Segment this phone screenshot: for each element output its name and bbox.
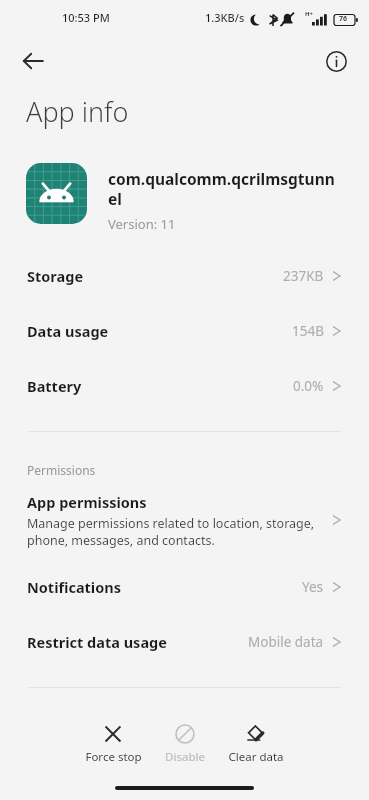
staticText: Force stop [85, 749, 142, 765]
button[interactable]: Restrict data usage [0, 619, 369, 665]
staticText: Data usage [27, 321, 109, 341]
button[interactable]: Clear data [223, 722, 289, 767]
staticText: Mobile data [248, 633, 324, 651]
button[interactable]: Battery [0, 363, 369, 409]
staticText: H+ [305, 10, 314, 18]
staticText: Storage [27, 266, 84, 286]
button[interactable]: App details [315, 40, 357, 82]
staticText: 1.3KB/s [205, 10, 245, 25]
button[interactable]: Back [12, 40, 54, 82]
staticText: Clear data [228, 749, 284, 765]
button[interactable]: Force stop [80, 722, 146, 767]
staticText: 154B [292, 322, 324, 340]
button: Disable [152, 722, 218, 767]
staticText: App info [26, 93, 129, 130]
staticText: Battery [27, 376, 82, 396]
staticText: Notifications [27, 577, 121, 597]
staticText: com.qualcomm.qcrilmsgtunn el [108, 168, 335, 210]
staticText: Version: 11 [108, 215, 176, 233]
staticText: Manage permissions related to location, … [27, 515, 315, 548]
button[interactable]: Data usage [0, 308, 369, 354]
staticText: 0.0% [293, 377, 324, 395]
staticText: 237KB [283, 267, 324, 285]
staticText: Yes [302, 578, 324, 596]
staticText: Disable [165, 749, 205, 765]
staticText: 76 [339, 14, 348, 24]
staticText: Restrict data usage [27, 632, 167, 652]
staticText: 10:53 PM [62, 10, 110, 25]
staticText: App permissions [27, 492, 147, 512]
button[interactable]: App permissions [0, 489, 369, 551]
staticText: Permissions [27, 462, 96, 478]
button[interactable]: Storage [0, 253, 369, 299]
button[interactable]: Notifications [0, 564, 369, 610]
